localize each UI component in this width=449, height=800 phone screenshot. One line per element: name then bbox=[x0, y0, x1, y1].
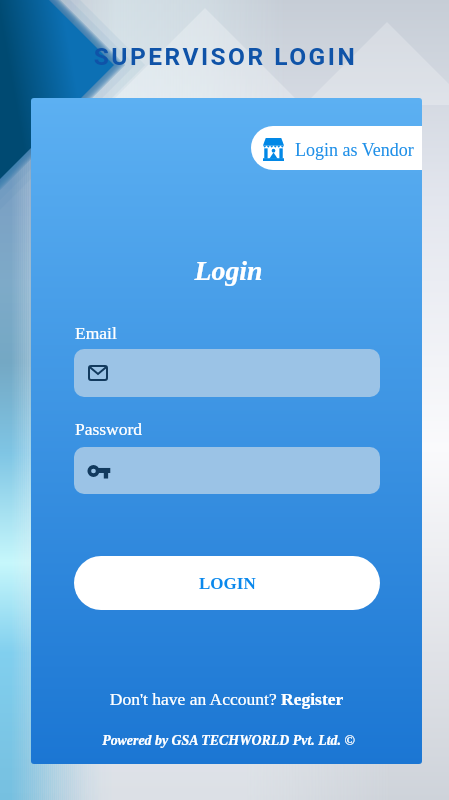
button[interactable]: LOGIN bbox=[74, 556, 380, 610]
button[interactable]: Login as Vendor bbox=[251, 126, 422, 170]
staticText: Powered by GSA TECHWORLD Pvt. Ltd. © bbox=[33, 733, 422, 748]
staticText: Password bbox=[75, 419, 143, 438]
button[interactable]: Don't have an Account? Register bbox=[31, 689, 422, 708]
staticText: Don't have an Account? Register bbox=[31, 689, 422, 708]
staticText: LOGIN bbox=[199, 574, 256, 593]
staticText: Login as Vendor bbox=[295, 140, 414, 160]
staticText: SUPERVISOR LOGIN bbox=[1, 42, 449, 800]
button[interactable]: Password bbox=[74, 447, 380, 494]
staticText: Email bbox=[75, 323, 117, 342]
button[interactable]: Email bbox=[74, 349, 380, 397]
staticText: Login bbox=[33, 255, 422, 286]
